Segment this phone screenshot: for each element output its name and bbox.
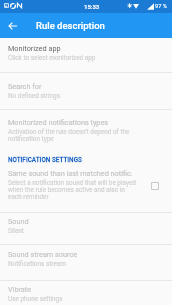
staticText: Sound stream source bbox=[8, 250, 78, 259]
staticText: Select a notification sound that will be… bbox=[8, 179, 140, 200]
button[interactable]: Vibrate bbox=[0, 281, 172, 305]
button[interactable]: Back bbox=[0, 13, 25, 38]
button[interactable]: Toggle bbox=[146, 177, 164, 195]
staticText: Click to select monitorized app bbox=[8, 54, 96, 62]
button[interactable]: Monitorized app bbox=[0, 38, 172, 72]
staticText: Vibrate bbox=[8, 285, 32, 294]
button[interactable]: Search for bbox=[0, 73, 172, 109]
staticText: Monitorized notifications types bbox=[8, 118, 109, 127]
staticText: Search for bbox=[8, 82, 42, 91]
button[interactable]: Same sound than last matched notific. bbox=[0, 167, 172, 212]
staticText: Activation of the rule doesn't depend of… bbox=[8, 128, 140, 142]
staticText: Silent bbox=[8, 227, 24, 235]
staticText: Same sound than last matched notific. bbox=[8, 169, 133, 178]
staticText: Use phone settings bbox=[8, 295, 63, 303]
staticText: 97 % bbox=[155, 3, 167, 10]
staticText: Sound bbox=[8, 217, 29, 226]
staticText: No defined strings bbox=[8, 92, 60, 100]
staticText: 15:33 bbox=[84, 3, 100, 10]
staticText: NOTIFICATION SETTINGS bbox=[8, 156, 82, 164]
staticText: Notifications stream bbox=[8, 260, 66, 268]
button[interactable]: Monitorized notifications types bbox=[0, 110, 172, 146]
button[interactable]: Sound stream source bbox=[0, 245, 172, 280]
staticText: Rule description bbox=[36, 20, 105, 31]
staticText: Monitorized app bbox=[8, 44, 61, 53]
button[interactable]: Sound bbox=[0, 213, 172, 244]
